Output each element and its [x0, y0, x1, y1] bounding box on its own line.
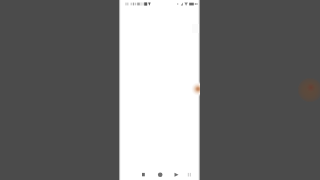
- button[interactable]: Add: [190, 81, 200, 97]
- button[interactable]: Back: [137, 169, 150, 180]
- button[interactable]: Recent apps: [169, 169, 182, 180]
- button[interactable]: Keyboard: [183, 169, 195, 180]
- button[interactable]: Status bar: [119, 0, 200, 9]
- button[interactable]: Home: [154, 169, 167, 180]
